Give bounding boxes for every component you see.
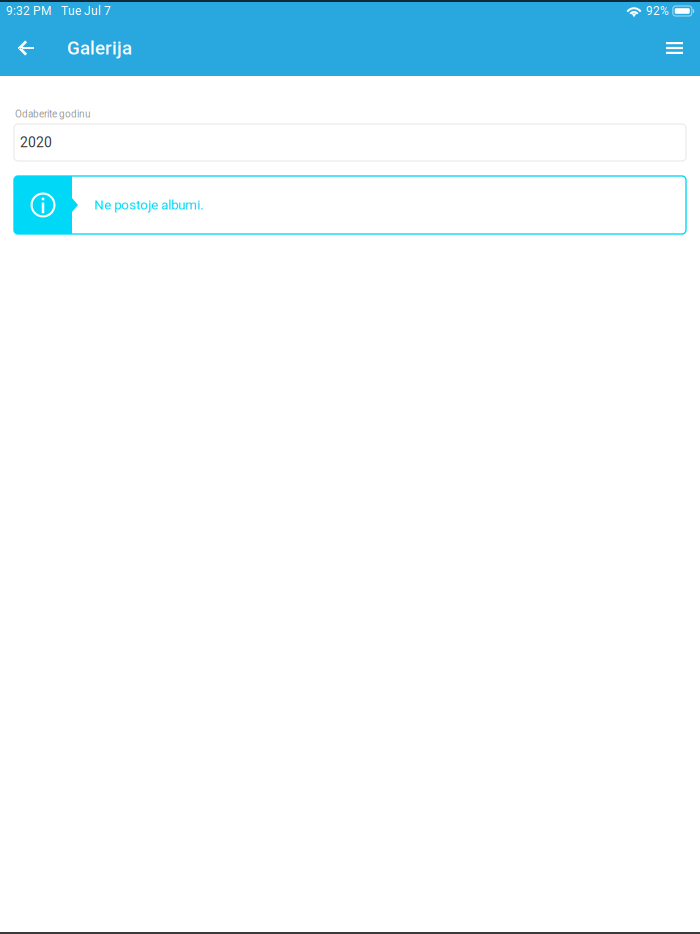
button[interactable]: Menu <box>657 20 692 76</box>
staticText: 92% <box>646 4 669 18</box>
staticText: Odaberite godinu <box>15 108 91 120</box>
staticText: Tue Jul 7 <box>61 4 111 18</box>
staticText: 2020 <box>20 134 52 151</box>
staticText: Galerija <box>67 37 132 59</box>
button[interactable]: 2020 <box>14 124 686 161</box>
button[interactable]: Back <box>8 20 42 76</box>
staticText: 9:32 PM <box>6 4 51 18</box>
staticText: Ne postoje albumi. <box>94 197 204 213</box>
